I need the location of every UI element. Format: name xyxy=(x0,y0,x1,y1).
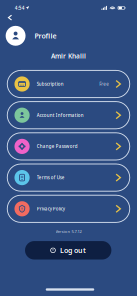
button[interactable]: Subscription xyxy=(7,70,130,98)
button[interactable]: Back xyxy=(3,12,16,24)
staticText: Profile xyxy=(34,31,56,41)
button[interactable]: Log out xyxy=(25,241,111,260)
staticText: Terms of Use xyxy=(37,175,65,181)
button[interactable]: Terms of Use xyxy=(7,164,130,191)
staticText: Change Password xyxy=(37,143,78,149)
button[interactable]: Change Password xyxy=(7,133,130,160)
staticText: Log out xyxy=(60,245,86,255)
staticText: Subscription xyxy=(37,81,64,87)
staticText: Account Information xyxy=(37,112,84,118)
staticText: Free xyxy=(99,81,109,87)
staticText: Amir Khalil xyxy=(51,52,86,60)
staticText: Version 5.7.12 xyxy=(56,229,82,234)
button[interactable]: Account Information xyxy=(7,102,130,129)
button[interactable]: Privacy Policy xyxy=(7,195,130,222)
staticText: 4:54 xyxy=(15,5,25,11)
staticText: Privacy Policy xyxy=(37,206,65,212)
